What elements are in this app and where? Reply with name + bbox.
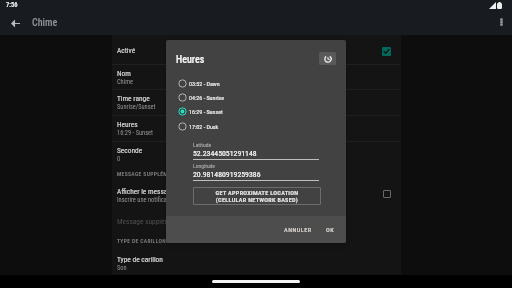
button[interactable]: Refresh sun times [319,52,336,65]
staticText: Inscrire une notification [117,196,177,204]
staticText: Sunrise/Sunset [117,103,156,111]
staticText: Chime [32,17,58,29]
staticText: Son [117,264,127,272]
button[interactable]: Activé [112,38,401,64]
button[interactable]: Nom [112,64,401,90]
staticText: 7:56 [6,1,18,9]
staticText: GET APPROXIMATE LOCATION (CELLULAR NETWO… [193,189,321,204]
staticText: OK [326,226,335,233]
button[interactable]: ANNULER [282,224,314,235]
staticText: 20.981480919259386 [193,170,261,179]
staticText: 17:02 - Dusk [189,123,219,130]
staticText: Type de carillon [117,255,163,264]
staticText: Nom [117,69,131,78]
staticText: 16:29 - Sunset [189,108,223,115]
staticText: Heures [117,120,138,129]
staticText: 03:52 - Dawn [189,80,220,87]
button[interactable]: More options [491,12,511,32]
button[interactable]: OK [324,224,337,235]
button[interactable]: Seconde [112,141,401,167]
staticText: TYPE DE CARILLON [117,238,167,245]
staticText: Afficher le message [117,187,175,196]
staticText: Longitude [193,163,215,170]
staticText: 04:26 - Sunrise [189,94,225,101]
staticText: Seconde [117,146,143,155]
button[interactable]: 03:52 - Dawn [166,76,346,90]
button[interactable]: 04:26 - Sunrise [166,90,346,104]
button[interactable]: GET APPROXIMATE LOCATION (CELLULAR NETWO… [193,187,321,205]
button[interactable]: Afficher le message [112,182,401,208]
staticText: Message supplémentaire [117,217,191,226]
staticText: Chime [117,78,133,86]
staticText: Latitude [193,142,212,149]
button[interactable]: Afficher le message [383,190,391,198]
staticText: Time range [117,94,150,103]
button[interactable]: Activé [382,47,391,56]
button[interactable]: 17:02 - Dusk [166,119,346,133]
staticText: 16:29 - Sunset [117,129,153,137]
button[interactable]: 16:29 - Sunset [166,104,346,118]
staticText: 52.23445051291148 [193,149,257,158]
button[interactable]: Time range [112,89,401,115]
button[interactable]: Type de carillon [112,250,401,276]
staticText: MESSAGE SUPPLÉMENTAIRE [117,171,190,178]
staticText: 0 [117,155,121,163]
button[interactable]: Heures [112,115,401,141]
button[interactable]: Back [5,13,25,33]
staticText: Activé [117,46,136,55]
staticText: Heures [176,54,205,66]
staticText: ANNULER [284,226,312,233]
